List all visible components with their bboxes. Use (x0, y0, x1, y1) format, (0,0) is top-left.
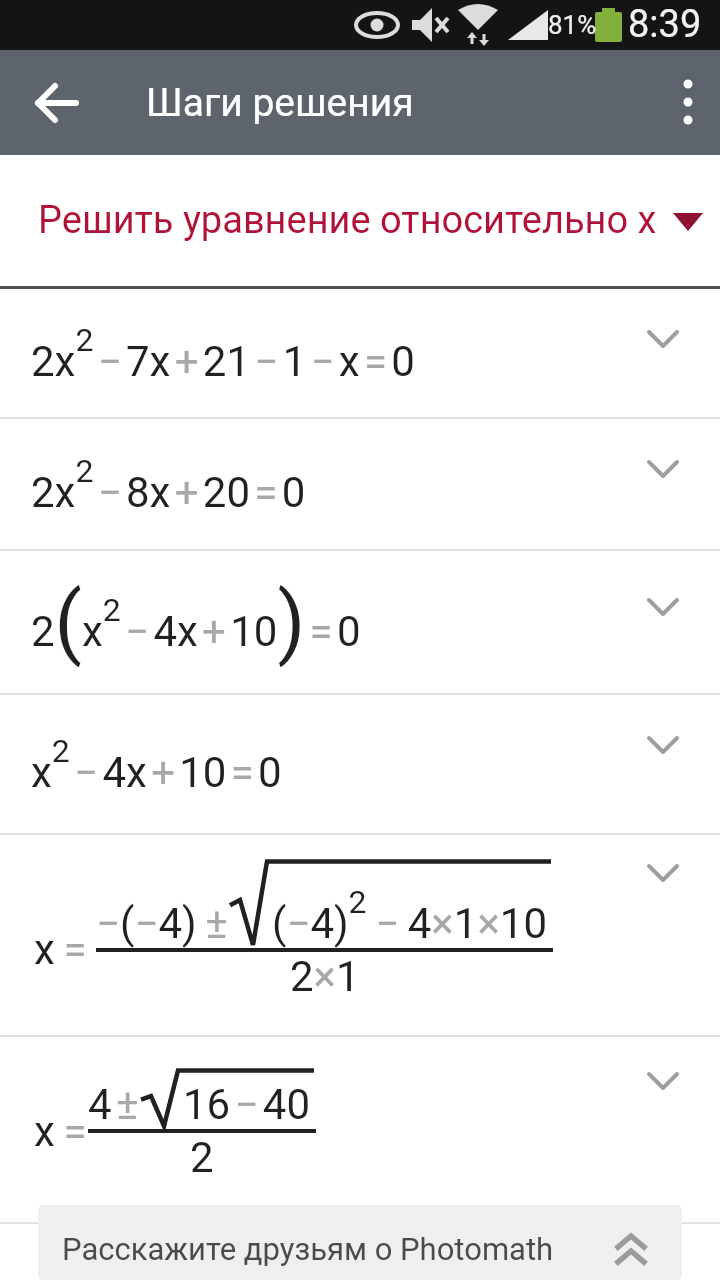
staticText: 2x2 − 7x + 21 − 1 − x = 0 (31, 321, 415, 386)
staticText: Шаги решения (146, 80, 414, 126)
button[interactable]: x = (0, 835, 720, 1035)
staticText: x = (34, 1107, 96, 1156)
staticText: Решить уравнение относительно x (38, 198, 657, 243)
staticText: 8:39 (628, 2, 702, 47)
staticText: 2(x2 − 4x + 10) = 0 (31, 575, 361, 669)
button[interactable]: 2(x2 − 4x + 10) = 0 (0, 551, 720, 693)
button[interactable]: Расскажите друзьям о Photomath (38, 1205, 682, 1280)
staticText: 16 − 40 (183, 1080, 311, 1129)
staticText: x2 − 4x + 10 = 0 (31, 732, 282, 797)
staticText: x = (34, 925, 96, 974)
staticText: (−4)2 − 4×1×10 (272, 883, 548, 948)
button[interactable]: 2x2 − 8x + 20 = 0 (0, 419, 720, 549)
button[interactable]: 2x2 − 7x + 21 − 1 − x = 0 (0, 289, 720, 417)
staticText: Расскажите друзьям о Photomath (62, 1231, 554, 1267)
button[interactable]: Решить уравнение относительно x (0, 155, 720, 286)
staticText: 4 ± (88, 1080, 139, 1129)
button[interactable]: x = (0, 1037, 720, 1205)
staticText: −(−4) ± (96, 899, 228, 948)
staticText: 81% (548, 10, 597, 40)
staticText: 2×1 (290, 952, 360, 1001)
button[interactable] (660, 50, 720, 155)
staticText: 2 (190, 1133, 214, 1182)
staticText: 2x2 − 8x + 20 = 0 (31, 452, 306, 517)
button[interactable] (30, 75, 86, 131)
button[interactable]: x2 − 4x + 10 = 0 (0, 695, 720, 833)
